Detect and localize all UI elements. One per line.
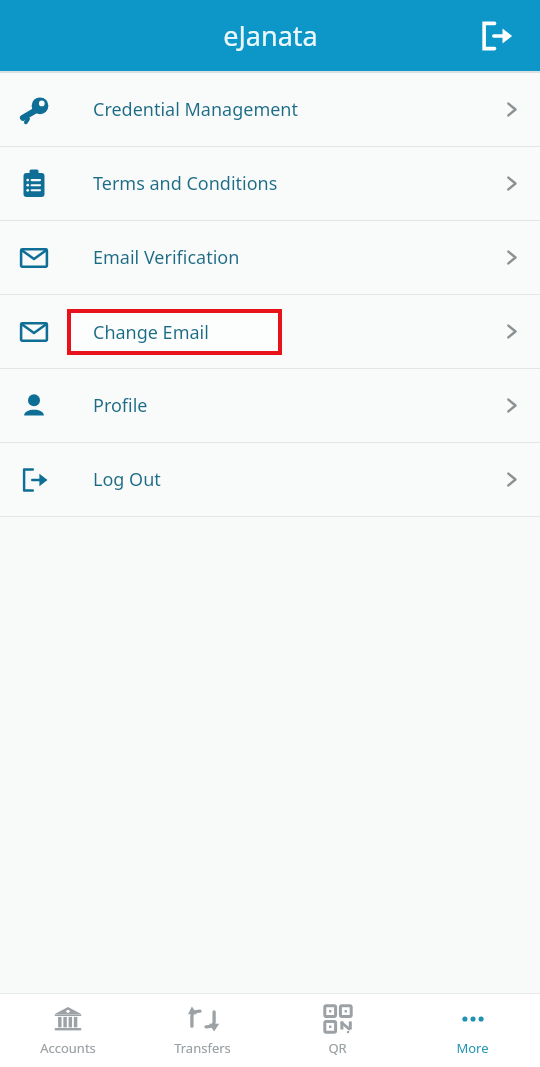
staticText: Transfers xyxy=(174,1039,231,1057)
button[interactable]: Credential Management xyxy=(0,73,540,146)
staticText: Change Email xyxy=(93,320,209,345)
button[interactable]: More xyxy=(405,994,540,1067)
staticText: QR xyxy=(328,1039,347,1057)
staticText: Log Out xyxy=(93,467,161,492)
button[interactable]: Log Out xyxy=(0,443,540,516)
staticText: Credential Management xyxy=(93,97,298,122)
button[interactable]: Email Verification xyxy=(0,221,540,294)
button[interactable]: Accounts xyxy=(0,994,135,1067)
button[interactable]: Terms and Conditions xyxy=(0,147,540,220)
staticText: Terms and Conditions xyxy=(93,171,278,196)
button[interactable]: Log out xyxy=(468,8,524,64)
staticText: Email Verification xyxy=(93,245,240,270)
staticText: Accounts xyxy=(40,1039,96,1057)
button[interactable]: Transfers xyxy=(135,994,270,1067)
button[interactable]: QR xyxy=(270,994,405,1067)
staticText: Profile xyxy=(93,393,148,418)
staticText: More xyxy=(456,1039,489,1057)
button[interactable]: Profile xyxy=(0,369,540,442)
button[interactable]: Change Email xyxy=(0,295,540,368)
staticText: eJanata xyxy=(223,17,318,54)
